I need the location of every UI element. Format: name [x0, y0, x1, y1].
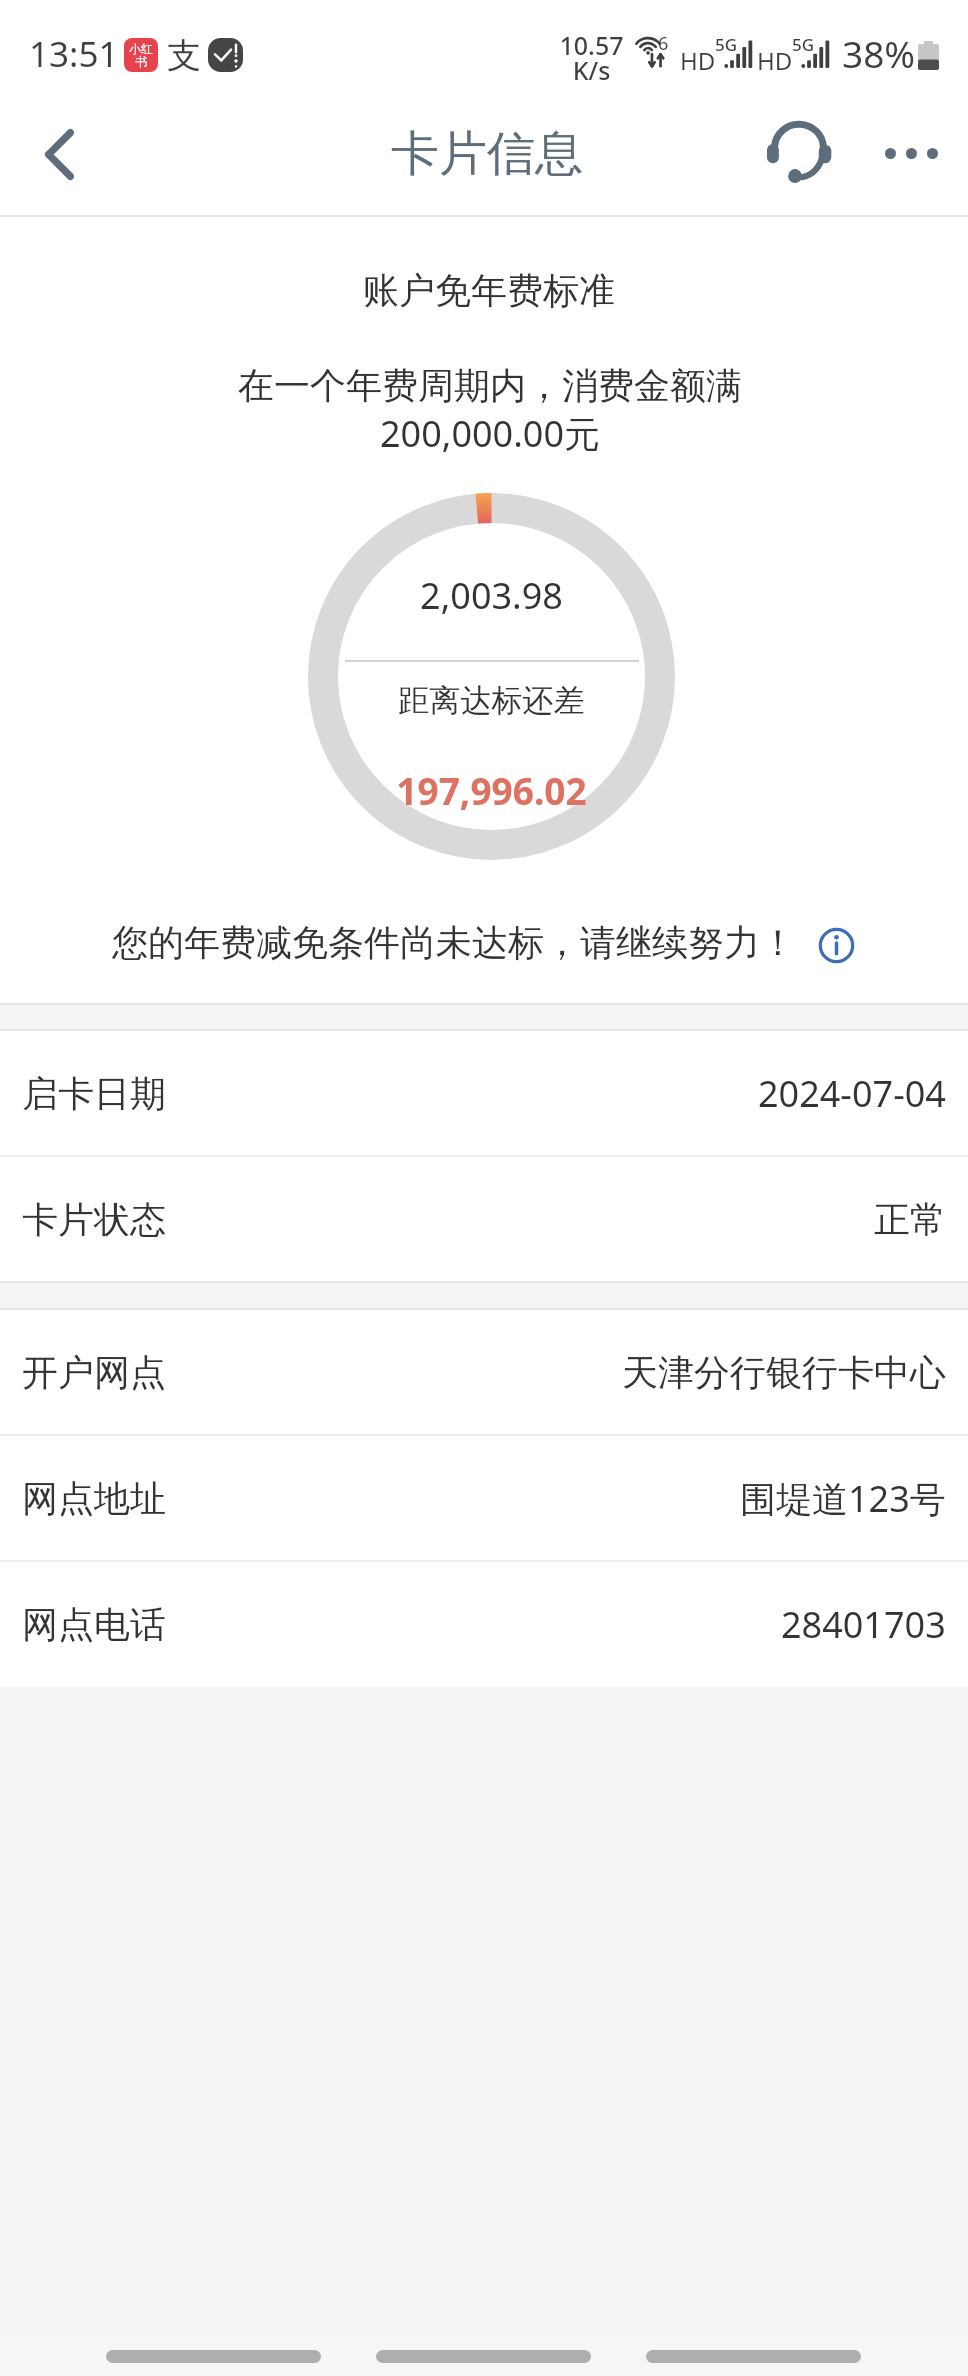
staticText: 启卡日期 [22, 1071, 166, 1116]
staticText: 您的年费减免条件尚未达标，请继续努力！ [112, 920, 796, 965]
staticText: 10.57 K/s [559, 28, 624, 87]
button[interactable]: Customer service [749, 103, 849, 203]
button[interactable]: More options [855, 97, 967, 209]
staticText: 13:51 [29, 30, 119, 78]
button[interactable]: 卡片状态 [0, 1157, 968, 1281]
staticText: 网点地址 [22, 1476, 166, 1521]
button[interactable]: Back [14, 109, 104, 199]
staticText: 网点电话 [22, 1602, 166, 1647]
button[interactable]: 网点电话 [0, 1562, 968, 1687]
staticText: 围堤道123号 [740, 1474, 946, 1523]
staticText: 账户免年费标准 [5, 268, 968, 313]
staticText: 小红书 [124, 41, 158, 69]
staticText: 支 [167, 34, 201, 77]
button[interactable]: 网点地址 [0, 1436, 968, 1562]
staticText: 2,003.98 [308, 571, 675, 620]
staticText: 在一个年费周期内，消费金额满 200,000.00元 [6, 363, 968, 458]
button[interactable]: 启卡日期 [0, 1031, 968, 1157]
staticText: HD [757, 44, 793, 77]
button[interactable]: Navigation [646, 2350, 861, 2363]
staticText: 5G [792, 33, 815, 56]
staticText: 5G [715, 33, 738, 56]
staticText: 6 [658, 31, 669, 56]
staticText: 38% [842, 28, 916, 78]
staticText: 正常 [874, 1197, 946, 1242]
button[interactable]: Navigation [376, 2350, 591, 2363]
staticText: 卡片状态 [22, 1197, 166, 1242]
staticText: 197,996.02 [308, 765, 675, 815]
staticText: 开户网点 [22, 1350, 166, 1395]
button[interactable]: 开户网点 [0, 1310, 968, 1436]
staticText: 卡片信息 [391, 124, 583, 184]
button[interactable]: Navigation [106, 2350, 321, 2363]
staticText: HD [680, 44, 716, 77]
staticText: 28401703 [781, 1600, 946, 1649]
staticText: 2024-07-04 [758, 1069, 946, 1118]
button[interactable]: Information [812, 916, 864, 968]
staticText: 距离达标还差 [308, 681, 675, 720]
staticText: 天津分行银行卡中心 [622, 1350, 946, 1395]
